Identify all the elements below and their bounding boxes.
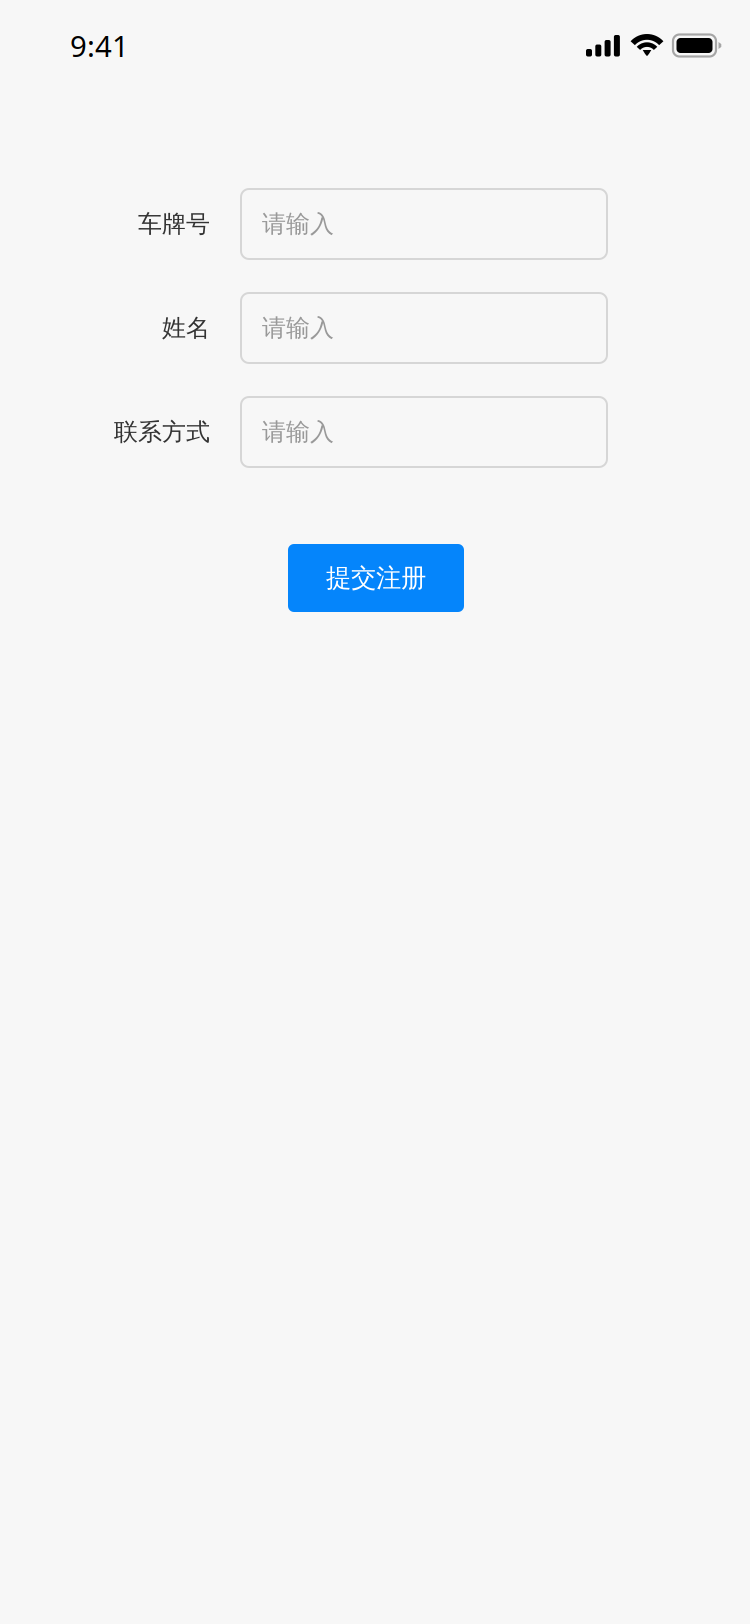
button[interactable]: 车牌号 <box>241 189 607 259</box>
button[interactable]: 联系方式 <box>241 397 607 467</box>
staticText: 车牌号 <box>138 209 210 239</box>
staticText: 9:41 <box>70 26 129 65</box>
staticText: 姓名 <box>162 313 210 343</box>
staticText: 请输入 <box>262 417 334 447</box>
staticText: 提交注册 <box>326 562 426 593</box>
staticText: 请输入 <box>262 209 334 239</box>
button[interactable]: 姓名 <box>241 293 607 363</box>
staticText: 联系方式 <box>114 417 210 447</box>
button[interactable]: 提交注册 <box>288 544 464 612</box>
staticText: 请输入 <box>262 313 334 343</box>
